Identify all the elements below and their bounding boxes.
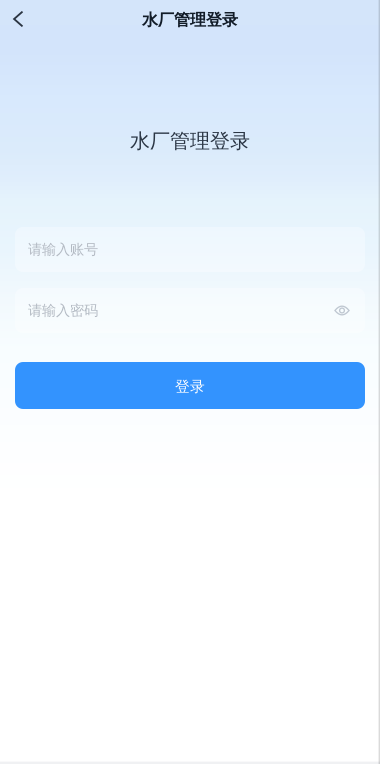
button[interactable]: Show password bbox=[327, 295, 357, 325]
staticText: 请输入账号 bbox=[28, 241, 98, 258]
button[interactable]: 登录 bbox=[15, 362, 365, 409]
staticText: 水厂管理登录 bbox=[130, 128, 250, 154]
button[interactable]: Back bbox=[0, 0, 36, 40]
staticText: 水厂管理登录 bbox=[142, 10, 238, 30]
staticText: 请输入密码 bbox=[28, 302, 98, 319]
staticText: 登录 bbox=[175, 377, 205, 396]
